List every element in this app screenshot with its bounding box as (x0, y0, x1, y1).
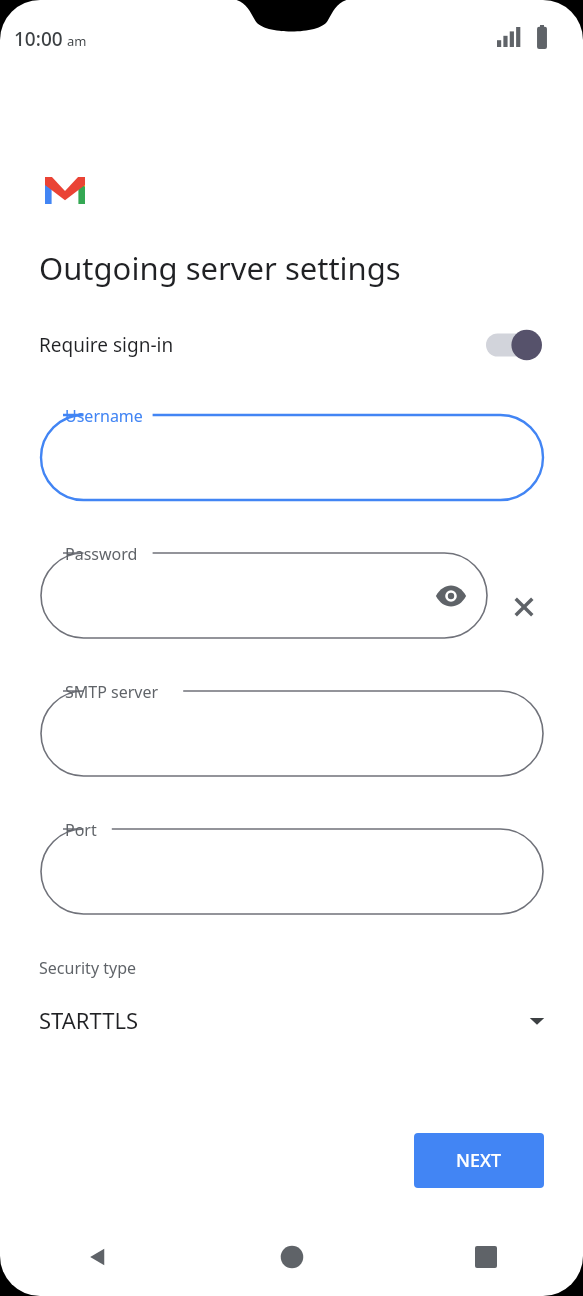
staticText: Security type (39, 957, 137, 979)
staticText: STARTTLS (39, 1005, 139, 1035)
staticText: am (67, 32, 87, 50)
staticText: Password (65, 543, 138, 565)
staticText: SMTP server (65, 681, 159, 703)
button[interactable]: Recent apps (389, 1218, 583, 1296)
button[interactable]: Username (41, 415, 543, 500)
button[interactable]: SMTP server (41, 691, 543, 776)
button[interactable]: Clear password (506, 589, 542, 625)
staticText: NEXT (456, 1148, 502, 1173)
button[interactable]: Require sign-in toggle (486, 328, 544, 362)
button[interactable]: Require sign-in (0, 324, 583, 366)
staticText: 10:00 (14, 26, 63, 52)
button[interactable]: NEXT (414, 1133, 544, 1188)
button[interactable]: Password (41, 553, 487, 638)
staticText: Port (65, 819, 97, 841)
button[interactable]: STARTTLS (0, 996, 583, 1044)
button[interactable]: Port (41, 829, 543, 914)
button[interactable]: Show password (433, 578, 469, 614)
staticText: Username (65, 405, 143, 427)
staticText: Outgoing server settings (39, 247, 401, 289)
button[interactable]: Back (0, 1218, 195, 1296)
staticText: Require sign-in (39, 332, 174, 358)
button[interactable]: Home (195, 1218, 389, 1296)
